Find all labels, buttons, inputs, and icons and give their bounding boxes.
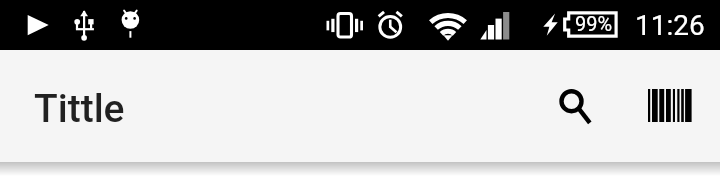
button[interactable]: Scan barcode: [623, 58, 719, 154]
staticText: 11:26: [635, 9, 705, 42]
staticText: Tittle: [34, 86, 125, 132]
button[interactable]: Search: [523, 58, 619, 154]
staticText: 99%: [575, 12, 613, 35]
